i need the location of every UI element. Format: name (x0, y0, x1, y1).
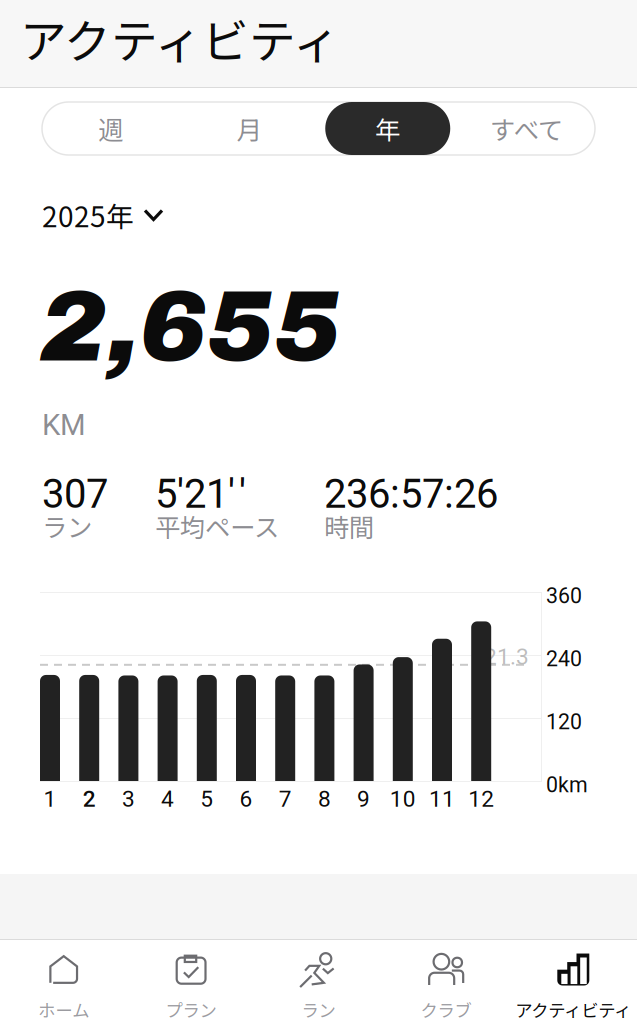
staticText: 2 (83, 786, 96, 812)
staticText: ラン (42, 508, 92, 544)
staticText: ラン (301, 997, 335, 1022)
staticText: 8 (318, 786, 331, 812)
button[interactable]: クラブ (382, 940, 510, 1024)
staticText: 時間 (324, 508, 374, 544)
staticText: 5'21' ' (155, 471, 246, 517)
staticText: 5 (200, 786, 213, 812)
staticText: KM (42, 408, 86, 442)
staticText: 12 (468, 786, 494, 812)
button[interactable]: アクティビティ (510, 940, 637, 1024)
staticText: 1 (43, 786, 56, 812)
staticText: ホーム (38, 997, 89, 1022)
staticText: 9 (357, 786, 370, 812)
button[interactable]: 2025年 (42, 198, 232, 232)
button[interactable]: ラン (255, 940, 382, 1024)
staticText: 4 (161, 786, 174, 812)
button[interactable]: 年 (318, 102, 457, 155)
staticText: 平均ペース (155, 508, 279, 544)
staticText: 3 (122, 786, 135, 812)
staticText: クラブ (420, 997, 471, 1022)
staticText: アクティビティ (515, 997, 631, 1022)
staticText: 307 (42, 471, 108, 517)
button[interactable]: 月 (180, 102, 318, 155)
staticText: 週 (98, 110, 123, 147)
staticText: 6 (239, 786, 252, 812)
staticText: 年 (375, 110, 400, 147)
staticText: 360 (546, 583, 582, 608)
staticText: 0km (546, 772, 588, 797)
button[interactable]: プラン (127, 940, 255, 1024)
staticText: アクティビティ (20, 4, 340, 72)
button[interactable]: ホーム (0, 940, 127, 1024)
staticText: すべて (490, 110, 563, 147)
staticText: 221.3 (471, 643, 529, 670)
staticText: 236:57:26 (324, 471, 498, 517)
staticText: 7 (279, 786, 292, 812)
button[interactable]: 週 (41, 102, 180, 155)
staticText: 11 (429, 786, 455, 812)
button[interactable]: すべて (457, 102, 595, 155)
staticText: プラン (166, 997, 217, 1022)
staticText: 120 (546, 709, 582, 734)
staticText: 240 (546, 646, 582, 671)
staticText: 月 (237, 110, 262, 147)
staticText: 10 (390, 786, 416, 812)
staticText: 2025年 (42, 195, 134, 235)
staticText: 2,655 (40, 273, 341, 381)
